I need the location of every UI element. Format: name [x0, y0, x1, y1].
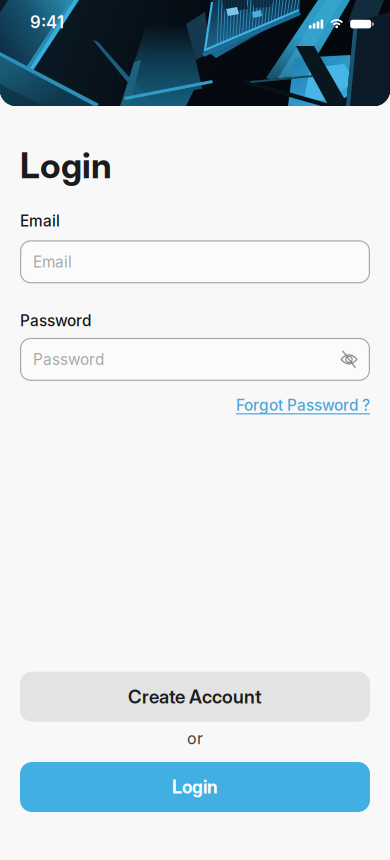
staticText: Forgot Password ?	[236, 396, 370, 414]
button[interactable]: Show password	[340, 352, 358, 367]
staticText: or	[187, 729, 203, 748]
staticText: Login	[172, 776, 218, 798]
staticText: Login	[20, 144, 112, 187]
button[interactable]: Create Account	[20, 672, 370, 722]
staticText: Email	[33, 252, 72, 271]
button[interactable]: Login	[20, 762, 370, 812]
staticText: Email	[20, 212, 60, 230]
staticText: Password	[33, 350, 104, 369]
staticText: Password	[20, 311, 91, 330]
button[interactable]: Forgot Password ?	[236, 396, 370, 414]
staticText: Create Account	[128, 685, 262, 708]
staticText: 9:41	[30, 12, 64, 32]
